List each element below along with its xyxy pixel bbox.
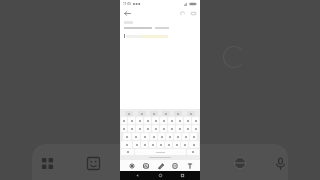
button[interactable] [160, 125, 167, 132]
button[interactable] [136, 117, 143, 124]
button[interactable] [150, 111, 158, 116]
button[interactable]: Add [126, 160, 137, 171]
button[interactable] [144, 117, 151, 124]
button[interactable] [174, 111, 182, 116]
button[interactable] [182, 133, 189, 140]
button[interactable] [144, 125, 151, 132]
button[interactable]: Bold [169, 160, 180, 171]
button[interactable]: Home [156, 171, 165, 180]
button[interactable] [121, 117, 127, 124]
button[interactable]: Back [133, 171, 142, 180]
button[interactable]: Language [230, 153, 250, 173]
button[interactable] [162, 111, 170, 116]
button[interactable] [128, 117, 135, 124]
button[interactable] [141, 133, 149, 140]
button[interactable] [132, 133, 140, 140]
button[interactable]: Image [140, 160, 151, 171]
button[interactable] [157, 141, 164, 148]
button[interactable] [176, 125, 183, 132]
button[interactable] [138, 111, 146, 116]
button[interactable] [187, 111, 195, 116]
button[interactable] [141, 141, 148, 148]
button[interactable] [149, 141, 156, 148]
button[interactable] [181, 141, 188, 148]
button[interactable] [124, 34, 196, 38]
button[interactable] [166, 133, 173, 140]
button[interactable] [121, 149, 134, 155]
button[interactable] [123, 133, 131, 140]
button[interactable]: Microphone [270, 153, 290, 173]
button[interactable] [192, 117, 199, 124]
button[interactable] [165, 141, 172, 148]
button[interactable] [150, 133, 157, 140]
button[interactable] [190, 133, 197, 140]
button[interactable]: Undo [178, 9, 187, 18]
button[interactable]: Apps grid [37, 153, 57, 173]
button[interactable] [152, 117, 159, 124]
button[interactable]: Draw [155, 160, 166, 171]
button[interactable] [173, 141, 180, 148]
button[interactable] [133, 141, 140, 148]
button[interactable] [174, 133, 181, 140]
button[interactable] [135, 149, 186, 155]
button[interactable]: Stickers [83, 153, 103, 173]
button[interactable] [184, 117, 191, 124]
button[interactable] [136, 125, 143, 132]
button[interactable]: Back [122, 8, 133, 19]
button[interactable] [187, 149, 199, 155]
button[interactable] [158, 133, 165, 140]
button[interactable]: Recent apps [178, 171, 187, 180]
button[interactable] [176, 117, 183, 124]
button[interactable] [160, 117, 167, 124]
button[interactable] [121, 125, 127, 132]
button[interactable] [125, 111, 133, 116]
button[interactable] [168, 117, 175, 124]
button[interactable]: Text format [184, 160, 195, 171]
staticText: 11:05 [123, 2, 132, 6]
button[interactable] [128, 125, 135, 132]
button[interactable] [121, 141, 132, 148]
button[interactable] [152, 125, 159, 132]
button[interactable] [192, 125, 199, 132]
button[interactable] [184, 125, 191, 132]
button[interactable] [168, 125, 175, 132]
button[interactable] [189, 141, 199, 148]
button[interactable]: More options [189, 9, 198, 18]
